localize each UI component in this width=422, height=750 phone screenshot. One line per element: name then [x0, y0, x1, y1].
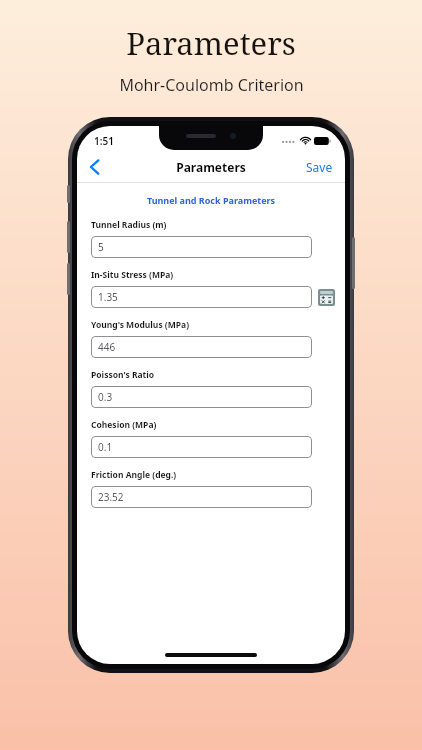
staticText: Save	[306, 159, 333, 175]
button[interactable]: Save	[294, 154, 345, 180]
staticText: Parameters	[176, 159, 246, 175]
button[interactable]: 5	[91, 236, 312, 258]
button[interactable]: 446	[91, 336, 312, 358]
staticText: Cohesion (MPa)	[91, 419, 157, 431]
staticText: 0.3	[98, 390, 113, 404]
staticText: Tunnel Radius (m)	[91, 219, 167, 231]
staticText: 0.1	[98, 440, 113, 454]
button[interactable]: Calculator	[318, 289, 335, 306]
staticText: Poisson's Ratio	[91, 369, 155, 381]
staticText: Tunnel and Rock Parameters	[77, 194, 345, 206]
staticText: 446	[98, 340, 116, 354]
staticText: Young's Modulus (MPa)	[91, 319, 190, 331]
staticText: 1.35	[98, 290, 118, 304]
staticText: Parameters	[126, 22, 296, 64]
staticText: Friction Angle (deg.)	[91, 469, 177, 481]
staticText: Mohr-Coulomb Criterion	[119, 74, 304, 96]
button[interactable]: 23.52	[91, 486, 312, 508]
button[interactable]: Back	[77, 152, 111, 182]
button[interactable]: 0.3	[91, 386, 312, 408]
button[interactable]: 1.35	[91, 286, 312, 308]
staticText: 5	[98, 240, 104, 254]
staticText: 1:51	[94, 134, 114, 148]
staticText: In-Situ Stress (MPa)	[91, 269, 174, 281]
button[interactable]: 0.1	[91, 436, 312, 458]
staticText: 23.52	[98, 490, 124, 504]
